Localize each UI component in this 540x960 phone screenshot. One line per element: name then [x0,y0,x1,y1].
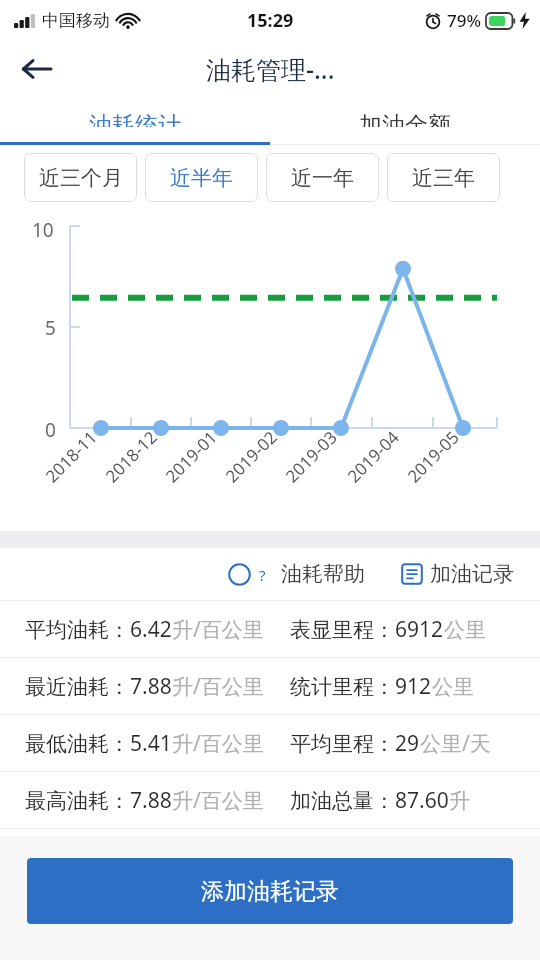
button[interactable]: 近三年 [387,153,500,202]
staticText: 近三个月 [39,165,123,191]
staticText: 油耗管理-... [206,52,335,86]
staticText: 6.42 [130,615,172,644]
staticText: 5.41 [130,729,172,758]
staticText: 近半年 [170,165,233,191]
staticText: 加油金额 [359,111,451,127]
staticText: 87.60 [395,786,449,815]
staticText: 公里 [432,674,474,700]
staticText: 最近油耗： [25,674,130,700]
staticText: 最高油耗： [25,788,130,814]
staticText: 29 [395,729,420,758]
staticText: 加油记录 [430,561,514,587]
staticText: 6912 [395,615,444,644]
staticText: 公里 [444,617,486,643]
staticText: 79% [447,9,481,32]
staticText: 10 [32,217,54,243]
staticText: 912 [395,672,432,701]
staticText: 升/百公里 [172,672,264,701]
button[interactable]: 加油金额 [270,97,540,141]
staticText: 表显里程： [290,617,395,643]
staticText: 添加油耗记录 [201,877,339,906]
staticText: 升 [449,788,470,814]
button[interactable]: Back [12,45,60,93]
staticText: 2018-12 [100,426,162,487]
staticText: 0 [45,417,56,443]
staticText: 升/百公里 [172,615,264,644]
staticText: 2019-02 [220,426,282,487]
staticText: 2019-04 [342,426,404,487]
staticText: 2019-03 [280,426,342,487]
button[interactable]: 添加油耗记录 [27,858,513,924]
button[interactable]: 近半年 [145,153,258,202]
staticText: 最低油耗： [25,731,130,757]
button[interactable]: ? [224,555,369,593]
button[interactable]: 近一年 [266,153,379,202]
staticText: 中国移动 [42,10,110,31]
staticText: 7.88 [130,786,172,815]
staticText: 15:29 [247,8,294,33]
button[interactable]: 近三个月 [24,153,137,202]
staticText: 2018-11 [40,426,102,487]
staticText: 统计里程： [290,674,395,700]
staticText: 油耗帮助 [281,561,365,587]
staticText: 加油总量： [290,788,395,814]
staticText: 升/百公里 [172,786,264,815]
staticText: 平均里程： [290,731,395,757]
button[interactable]: 加油记录 [397,555,518,593]
staticText: 2019-05 [402,426,464,487]
staticText: 平均油耗： [25,617,130,643]
staticText: 2019-01 [160,426,222,487]
staticText: 7.88 [130,672,172,701]
staticText: 近一年 [291,165,354,191]
staticText: 油耗统计 [89,111,181,127]
button[interactable]: 油耗统计 [0,97,270,141]
staticText: ? [259,565,266,585]
staticText: 升/百公里 [172,729,264,758]
staticText: 5 [45,315,56,341]
staticText: 近三年 [412,165,475,191]
staticText: 公里/天 [420,729,491,758]
